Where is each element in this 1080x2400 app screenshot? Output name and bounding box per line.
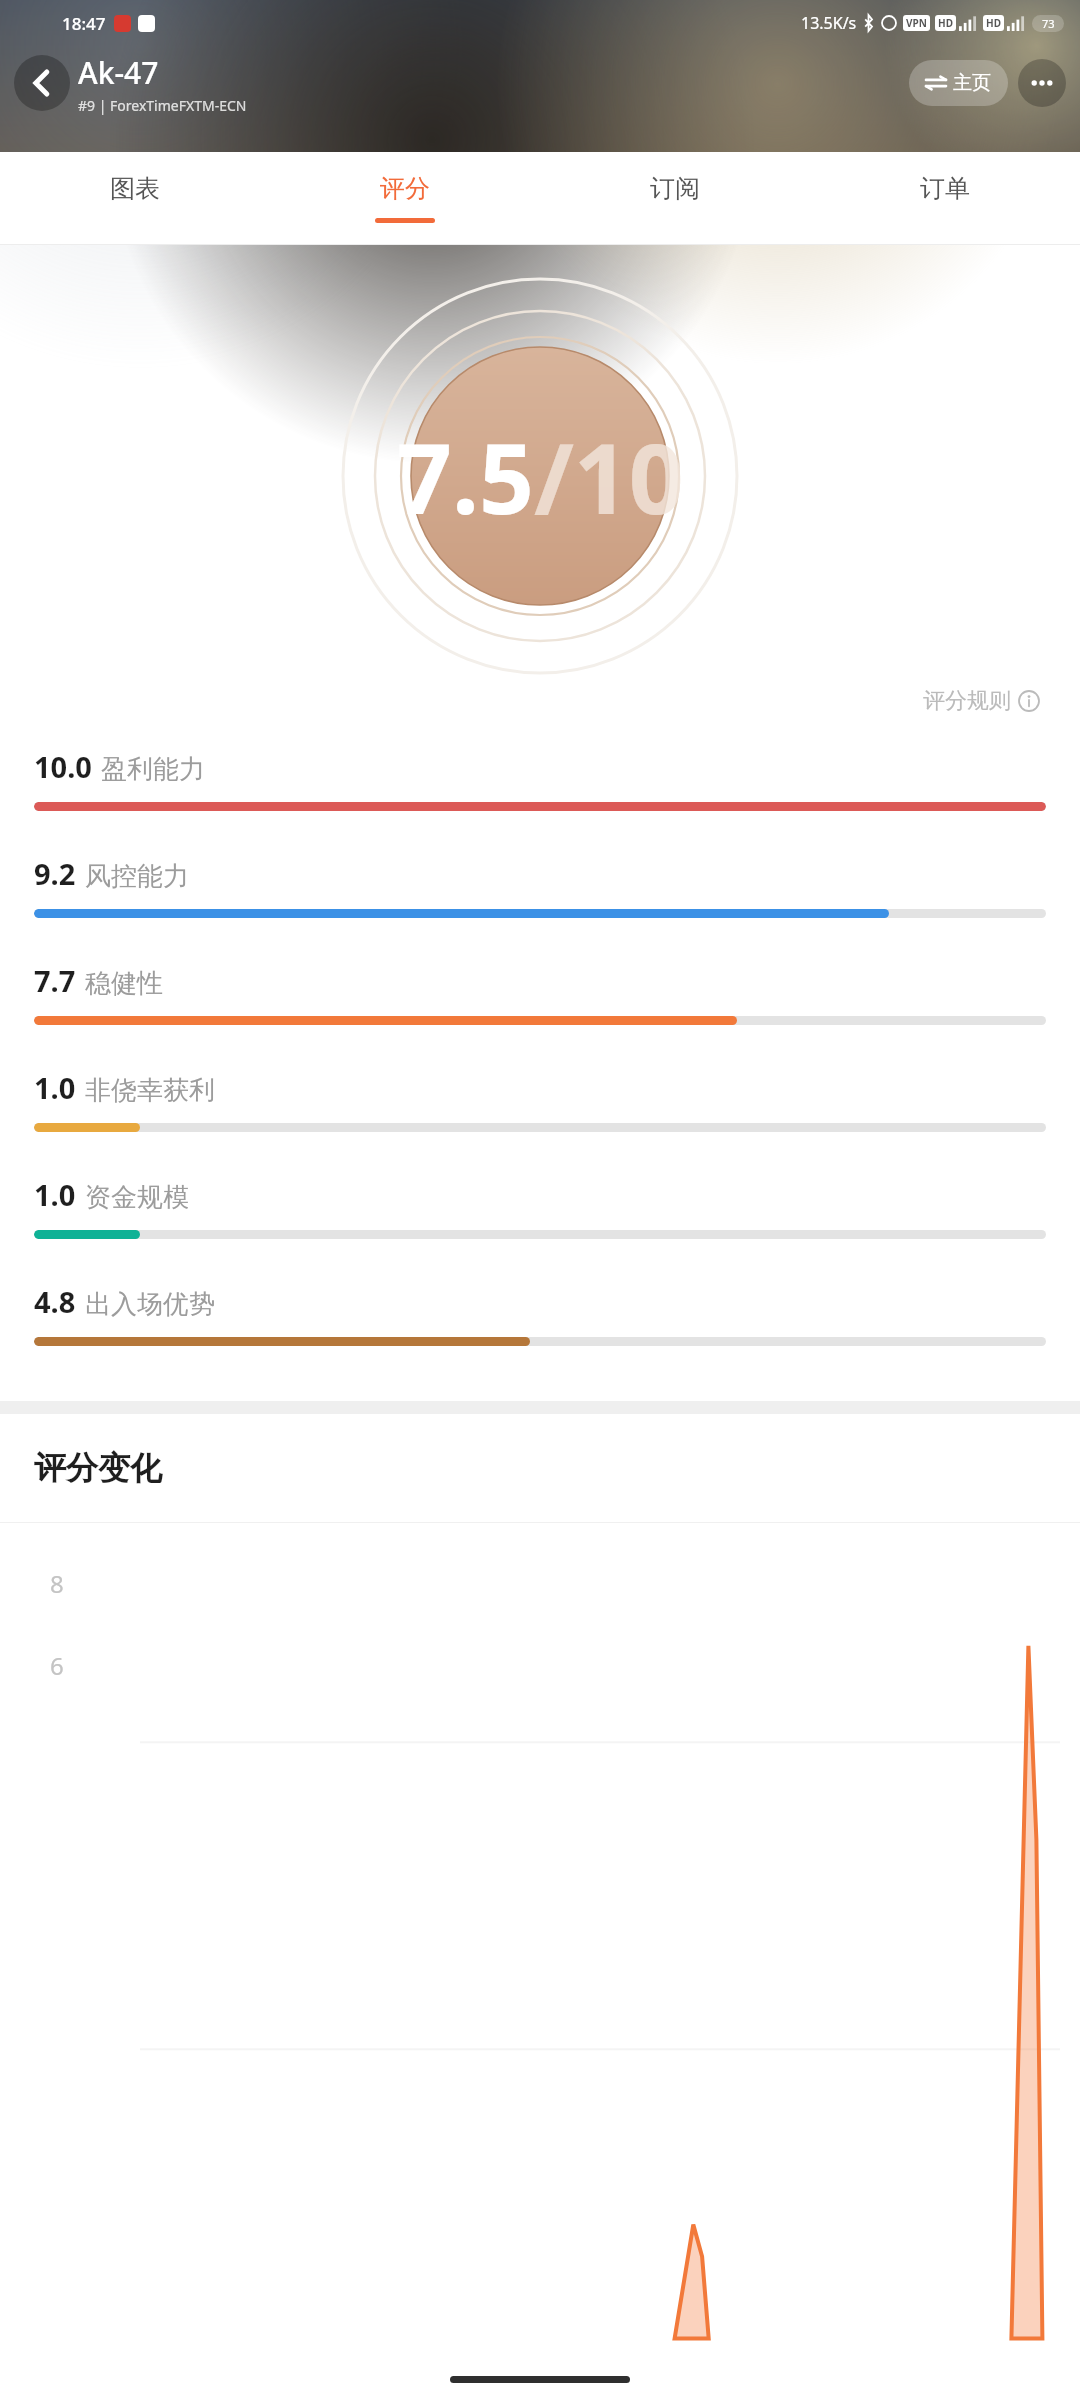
staticText: 订阅 xyxy=(650,173,700,204)
staticText: 73 xyxy=(1042,16,1055,31)
button[interactable]: 订单 xyxy=(810,152,1080,244)
staticText: 资金规模 xyxy=(85,1181,189,1214)
staticText: 6 xyxy=(50,1649,64,1682)
staticText: /10 xyxy=(534,411,684,542)
button[interactable]: 1.0 xyxy=(34,1175,1046,1282)
staticText: 出入场优势 xyxy=(85,1288,215,1321)
button[interactable]: 4.8 xyxy=(34,1282,1046,1389)
staticText: 7.5 xyxy=(397,411,534,542)
staticText: 订单 xyxy=(920,173,970,204)
staticText: Ak-47 xyxy=(78,52,159,93)
staticText: 8 xyxy=(50,1567,64,1600)
staticText: HD xyxy=(938,16,953,30)
staticText: 1.0 xyxy=(34,1068,76,1107)
button[interactable]: 10.0 xyxy=(34,747,1046,854)
staticText: 评分规则 xyxy=(923,687,1011,715)
button[interactable]: 1.0 xyxy=(34,1068,1046,1175)
staticText: 图表 xyxy=(110,173,160,204)
staticText: 非侥幸获利 xyxy=(85,1074,215,1107)
button[interactable]: 评分 xyxy=(270,152,540,244)
staticText: 风控能力 xyxy=(85,860,189,893)
button[interactable]: 评分规则 xyxy=(917,681,1046,721)
button[interactable]: Back xyxy=(14,55,70,111)
button[interactable]: More options xyxy=(1018,59,1066,107)
button[interactable]: 主页 xyxy=(909,60,1008,106)
staticText: 7.7 xyxy=(34,961,76,1000)
staticText: 盈利能力 xyxy=(101,753,205,786)
staticText: 1.0 xyxy=(34,1175,76,1214)
button[interactable]: 订阅 xyxy=(540,152,810,244)
staticText: #9 | ForexTimeFXTM-ECN xyxy=(78,96,247,115)
staticText: 4.8 xyxy=(34,1282,76,1321)
staticText: 主页 xyxy=(953,71,991,95)
staticText: 10.0 xyxy=(34,747,92,786)
staticText: 评分 xyxy=(380,173,430,204)
staticText: 9.2 xyxy=(34,854,76,893)
staticText: HD xyxy=(986,16,1001,30)
staticText: 评分变化 xyxy=(34,1448,162,1488)
staticText: 18:47 xyxy=(62,12,106,35)
button[interactable]: 图表 xyxy=(0,152,270,244)
staticText: VPN xyxy=(906,16,927,30)
button[interactable]: 9.2 xyxy=(34,854,1046,961)
staticText: 13.5K/s xyxy=(801,12,857,34)
staticText: 稳健性 xyxy=(85,967,163,1000)
button[interactable]: 7.7 xyxy=(34,961,1046,1068)
